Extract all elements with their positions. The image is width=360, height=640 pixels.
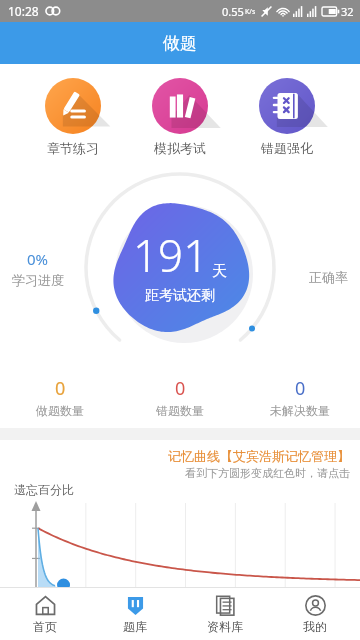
staticText: 做题数量	[36, 403, 84, 418]
button[interactable]: 0	[240, 374, 360, 420]
staticText: 题库	[123, 619, 147, 634]
staticText: 遗忘百分比	[14, 482, 74, 497]
staticText: 记忆曲线【艾宾浩斯记忆管理】	[168, 448, 350, 464]
staticText: 未解决数量	[270, 403, 330, 418]
staticText: 看到下方圆形变成红色时，请点击	[185, 466, 350, 480]
staticText: 错题数量	[156, 403, 204, 418]
button[interactable]: 章节练习	[39, 76, 107, 158]
staticText: 距考试还剩	[145, 287, 215, 305]
button[interactable]: 资料库	[180, 588, 270, 640]
staticText: 正确率	[309, 269, 348, 285]
staticText: 32	[341, 4, 354, 19]
staticText: 错题强化	[261, 140, 313, 156]
button[interactable]: 我的	[270, 588, 360, 640]
staticText: 我的	[303, 619, 327, 634]
button[interactable]: 题库	[90, 588, 180, 640]
button[interactable]: 首页	[0, 588, 90, 640]
button[interactable]: 0	[0, 374, 120, 420]
staticText: K/s	[245, 7, 256, 17]
button[interactable]: 0	[120, 374, 240, 420]
staticText: 0	[55, 376, 66, 401]
button[interactable]: 错题强化	[253, 76, 321, 158]
staticText: 0	[175, 376, 186, 401]
staticText: 191	[133, 225, 209, 285]
staticText: 学习进度	[12, 272, 64, 288]
staticText: 10:28	[8, 3, 39, 19]
staticText: 首页	[33, 619, 57, 634]
staticText: 0%	[27, 249, 49, 269]
staticText: 资料库	[207, 619, 243, 634]
staticText: 天	[212, 262, 227, 281]
staticText: 模拟考试	[154, 140, 206, 156]
staticText: 章节练习	[47, 140, 99, 156]
staticText: 0.55	[222, 4, 244, 19]
staticText: 0	[295, 376, 306, 401]
staticText: 做题	[163, 33, 197, 54]
button[interactable]: 模拟考试	[146, 76, 214, 158]
